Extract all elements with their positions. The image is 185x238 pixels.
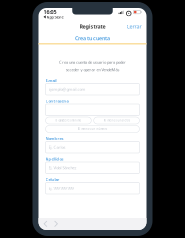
- button[interactable]: Crea tu cuenta: [38, 33, 146, 43]
- staticText: Regístrate: [79, 23, 105, 30]
- button[interactable]: Celular: [45, 176, 139, 194]
- button[interactable]: E-mail: [45, 77, 139, 95]
- staticText: Al menos una letra: [104, 119, 130, 122]
- staticText: ejemplo@gmail.com: [48, 87, 85, 92]
- staticText: Ej. 999 999 999: [48, 186, 73, 191]
- staticText: Cerrar: [126, 23, 141, 30]
- staticText: Contraseña: [45, 98, 68, 104]
- staticText: E-mail: [45, 78, 56, 83]
- staticText: Al menos un número: [77, 127, 107, 131]
- staticText: Ej. Carlos: [48, 145, 65, 150]
- button[interactable]: Contraseña: [45, 98, 139, 115]
- staticText: 8 caracteres mínimo: [55, 119, 81, 122]
- staticText: acceder y operar en VendeMás: [65, 67, 119, 72]
- button[interactable]: Nombres: [45, 135, 139, 153]
- staticText: Crea tu cuenta: [75, 35, 110, 42]
- staticText: Nombres: [45, 136, 63, 141]
- staticText: Crea una cuenta de usuario para poder: [59, 59, 126, 65]
- staticText: App Store: [47, 14, 64, 20]
- button[interactable]: Next field: [54, 221, 58, 227]
- button[interactable]: Cerrar: [126, 23, 141, 30]
- button[interactable]: Previous field: [43, 221, 47, 227]
- staticText: Ej. Vidal Sánchez: [48, 165, 76, 170]
- staticText: Apellidos: [45, 156, 63, 162]
- staticText: 16:05: [43, 8, 56, 16]
- button[interactable]: Apellidos: [45, 156, 139, 173]
- staticText: Celular: [45, 177, 59, 182]
